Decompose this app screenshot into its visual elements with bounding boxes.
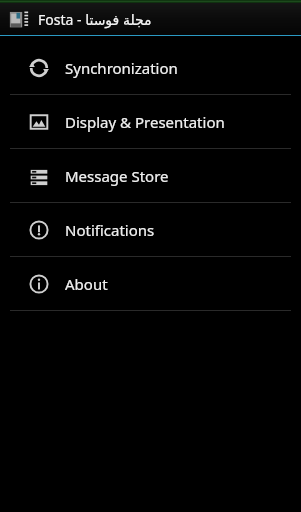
button[interactable]: Synchronization <box>0 41 301 94</box>
button[interactable]: Display & Presentation <box>0 95 301 148</box>
button[interactable]: Message Store <box>0 149 301 202</box>
button[interactable]: About <box>0 257 301 310</box>
staticText: Display & Presentation <box>65 112 225 132</box>
staticText: Message Store <box>65 166 169 186</box>
staticText: Synchronization <box>65 58 178 78</box>
button[interactable]: Notifications <box>0 203 301 256</box>
staticText: Notifications <box>65 220 155 240</box>
staticText: Fosta - مجلة فوستا <box>38 10 152 29</box>
staticText: About <box>65 274 108 294</box>
